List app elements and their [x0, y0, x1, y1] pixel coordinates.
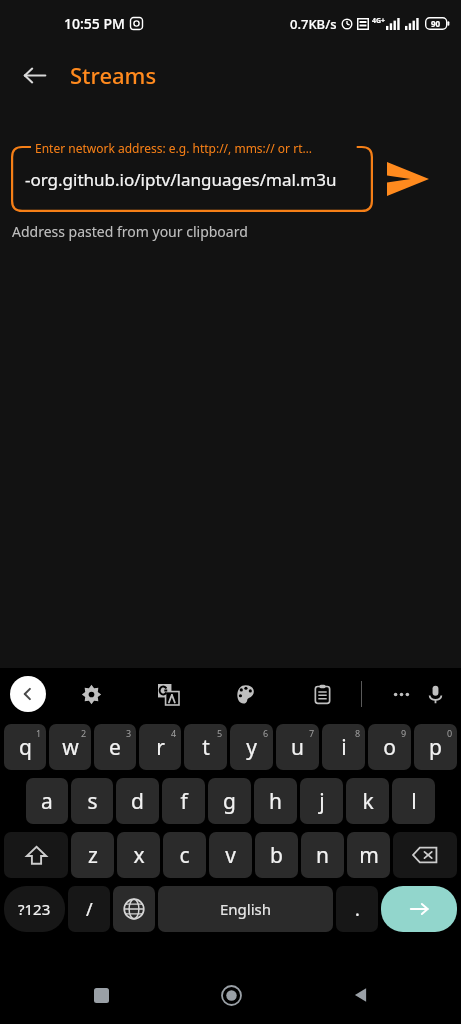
- staticText: 7: [309, 727, 315, 739]
- staticText: w: [62, 733, 79, 762]
- staticText: 2: [81, 727, 87, 739]
- button[interactable]: ?123: [4, 886, 65, 932]
- button[interactable]: d: [116, 778, 159, 824]
- staticText: l: [411, 787, 417, 816]
- staticText: q: [19, 733, 32, 762]
- button[interactable]: Recent apps: [79, 973, 123, 1017]
- staticText: k: [362, 787, 374, 816]
- button[interactable]: l: [392, 778, 435, 824]
- staticText: r: [156, 733, 165, 762]
- button[interactable]: Shift: [4, 832, 68, 878]
- staticText: 10:55 PM: [64, 14, 125, 33]
- staticText: 1: [36, 727, 42, 739]
- staticText: g: [223, 787, 236, 816]
- button[interactable]: z: [71, 832, 114, 878]
- button[interactable]: Play stream: [383, 154, 433, 204]
- button[interactable]: a: [26, 778, 68, 824]
- staticText: 4: [171, 727, 177, 739]
- button[interactable]: i: [322, 724, 365, 770]
- staticText: n: [316, 841, 329, 870]
- button[interactable]: p: [414, 724, 457, 770]
- button[interactable]: Voice input: [418, 677, 452, 711]
- button[interactable]: t: [184, 724, 227, 770]
- staticText: 4G+: [372, 16, 386, 26]
- staticText: o: [383, 733, 396, 762]
- button[interactable]: v: [209, 832, 252, 878]
- button[interactable]: u: [276, 724, 319, 770]
- staticText: x: [133, 841, 145, 870]
- button[interactable]: English: [158, 886, 333, 932]
- staticText: Address pasted from your clipboard: [12, 222, 248, 241]
- button[interactable]: y: [230, 724, 273, 770]
- button[interactable]: .: [336, 886, 378, 932]
- staticText: v: [225, 841, 236, 870]
- button[interactable]: More options: [384, 677, 418, 711]
- staticText: 8: [355, 727, 361, 739]
- staticText: 90: [431, 18, 441, 29]
- button[interactable]: Backspace: [393, 832, 457, 878]
- button[interactable]: g: [208, 778, 251, 824]
- staticText: b: [270, 841, 283, 870]
- staticText: c: [179, 841, 190, 870]
- button[interactable]: Themes: [228, 677, 262, 711]
- staticText: 0.7KB/s: [290, 15, 337, 33]
- button[interactable]: k: [346, 778, 389, 824]
- button[interactable]: Back: [339, 973, 383, 1017]
- staticText: f: [180, 787, 188, 816]
- button[interactable]: /: [68, 886, 110, 932]
- staticText: 3: [126, 727, 132, 739]
- button[interactable]: e: [94, 724, 136, 770]
- button[interactable]: x: [117, 832, 160, 878]
- staticText: -org.github.io/iptv/languages/mal.m3u: [25, 168, 337, 191]
- button[interactable]: s: [71, 778, 113, 824]
- staticText: i: [341, 733, 347, 762]
- staticText: y: [246, 733, 257, 762]
- staticText: /: [86, 897, 93, 922]
- button[interactable]: Enter: [381, 886, 457, 932]
- staticText: English: [220, 899, 272, 919]
- button[interactable]: Settings: [74, 677, 108, 711]
- staticText: j: [319, 787, 325, 816]
- button[interactable]: Back: [12, 53, 56, 97]
- button[interactable]: w: [49, 724, 91, 770]
- staticText: .: [355, 897, 360, 922]
- staticText: ?123: [18, 899, 51, 919]
- button[interactable]: q: [4, 724, 46, 770]
- staticText: u: [291, 733, 304, 762]
- button[interactable]: r: [139, 724, 181, 770]
- button[interactable]: n: [301, 832, 344, 878]
- button[interactable]: f: [162, 778, 205, 824]
- button[interactable]: c: [163, 832, 206, 878]
- staticText: e: [109, 733, 121, 762]
- staticText: Streams: [70, 60, 157, 90]
- staticText: 5: [217, 727, 223, 739]
- staticText: a: [41, 787, 53, 816]
- staticText: m: [359, 841, 379, 870]
- button[interactable]: b: [255, 832, 298, 878]
- staticText: 6: [263, 727, 269, 739]
- staticText: s: [87, 787, 98, 816]
- button[interactable]: Home: [209, 973, 253, 1017]
- button[interactable]: Clipboard: [305, 677, 339, 711]
- button[interactable]: Collapse toolbar: [10, 676, 46, 712]
- button[interactable]: Change language: [113, 886, 155, 932]
- staticText: p: [429, 733, 442, 762]
- button[interactable]: Enter network address: e.g. http://, mms…: [11, 138, 373, 212]
- staticText: z: [88, 841, 98, 870]
- staticText: 9: [401, 727, 407, 739]
- button[interactable]: o: [368, 724, 411, 770]
- button[interactable]: j: [300, 778, 343, 824]
- staticText: t: [202, 733, 210, 762]
- staticText: 0: [447, 727, 453, 739]
- staticText: h: [269, 787, 282, 816]
- staticText: Enter network address: e.g. http://, mms…: [35, 140, 312, 156]
- button[interactable]: h: [254, 778, 297, 824]
- button[interactable]: m: [347, 832, 390, 878]
- button[interactable]: Translate: [151, 677, 185, 711]
- staticText: d: [131, 787, 144, 816]
